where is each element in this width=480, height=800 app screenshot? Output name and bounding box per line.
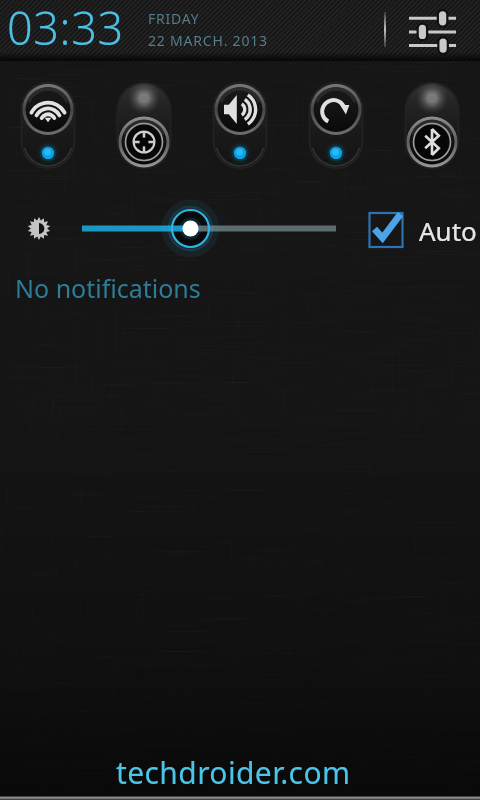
button[interactable]: Bluetooth	[384, 78, 480, 178]
staticText: 03:33	[7, 0, 124, 58]
button[interactable]: Auto	[367, 206, 477, 254]
button[interactable]: Quick settings	[409, 7, 456, 51]
staticText: 22 MARCH. 2013	[148, 31, 268, 50]
button[interactable]: Auto rotate	[288, 78, 384, 178]
staticText: techdroider.com	[116, 752, 351, 793]
button[interactable]: GPS	[96, 78, 192, 178]
staticText: Auto	[419, 213, 477, 248]
button[interactable]: Brightness	[70, 208, 350, 252]
button[interactable]: Sound	[192, 78, 288, 178]
staticText: No notifications	[15, 271, 201, 305]
staticText: FRIDAY	[148, 9, 200, 28]
button[interactable]: Wi-Fi	[0, 78, 96, 178]
